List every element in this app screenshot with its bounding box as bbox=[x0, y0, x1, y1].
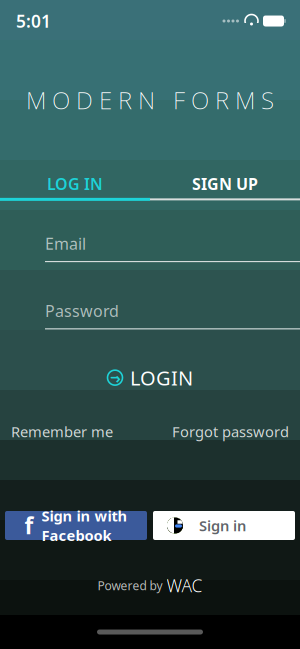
staticText: › bbox=[115, 368, 120, 387]
staticText: WAC bbox=[166, 574, 202, 597]
staticText: Password bbox=[45, 300, 119, 321]
staticText: Forgot password bbox=[172, 422, 289, 441]
button[interactable]: LOG IN bbox=[0, 170, 150, 198]
button[interactable]: f bbox=[5, 511, 147, 540]
staticText: M O D E R N F O R M S bbox=[26, 84, 274, 116]
staticText: Powered by bbox=[97, 577, 162, 593]
staticText: Remember me bbox=[11, 422, 113, 441]
staticText: LOG IN bbox=[47, 173, 103, 194]
button[interactable]: Forgot password bbox=[172, 418, 289, 445]
staticText: Sign in bbox=[199, 516, 246, 535]
button[interactable]: Remember me bbox=[11, 418, 113, 445]
staticText: LOGIN bbox=[130, 364, 193, 391]
staticText: Email bbox=[45, 233, 86, 254]
button[interactable]: SIGN UP bbox=[150, 170, 300, 198]
staticText: 5:01 bbox=[16, 9, 51, 32]
staticText: SIGN UP bbox=[192, 173, 258, 194]
button[interactable]: › bbox=[97, 359, 203, 396]
staticText: Sign in with Facebook bbox=[41, 506, 127, 545]
button[interactable]: Sign in bbox=[153, 511, 295, 540]
staticText: f bbox=[24, 510, 33, 540]
